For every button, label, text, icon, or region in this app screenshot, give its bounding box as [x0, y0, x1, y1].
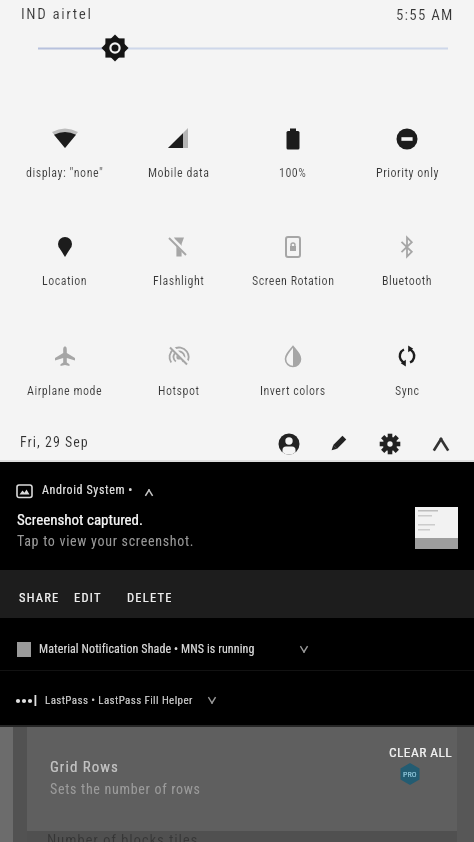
staticText: CLEAR ALL: [389, 744, 453, 760]
staticText: Screen Rotation: [252, 274, 335, 288]
staticText: Tap to view your screenshot.: [17, 533, 195, 549]
button[interactable]: [421, 424, 461, 464]
staticText: IND airtel: [21, 5, 93, 23]
button[interactable]: [370, 424, 410, 464]
staticText: Fri, 29 Sep: [20, 434, 89, 450]
staticText: EDIT: [74, 590, 102, 605]
button[interactable]: [122, 215, 236, 299]
button[interactable]: [350, 324, 464, 408]
button[interactable]: Android System •: [0, 466, 474, 564]
button[interactable]: DELETE: [118, 580, 182, 614]
staticText: Flashlight: [153, 274, 205, 288]
staticText: PRO: [403, 770, 417, 779]
button[interactable]: [236, 215, 350, 299]
button[interactable]: CLEAR ALL: [380, 742, 462, 762]
staticText: Sync: [395, 384, 420, 398]
button[interactable]: Material Notification Shade • MNS is run…: [0, 630, 474, 668]
staticText: Material Notification Shade • MNS is run…: [39, 642, 255, 656]
staticText: Invert colors: [260, 384, 326, 398]
button[interactable]: LastPass • LastPass Fill Helper: [0, 682, 474, 720]
staticText: Screenshot captured.: [17, 511, 144, 529]
staticText: Location: [42, 274, 88, 288]
staticText: LastPass • LastPass Fill Helper: [45, 694, 193, 707]
button[interactable]: [350, 107, 464, 191]
staticText: DELETE: [127, 590, 173, 605]
button[interactable]: [122, 324, 236, 408]
button[interactable]: [30, 30, 456, 66]
button[interactable]: [236, 107, 350, 191]
button[interactable]: [8, 107, 122, 191]
button[interactable]: SHARE: [8, 580, 70, 614]
staticText: 100%: [279, 166, 307, 180]
button[interactable]: [8, 324, 122, 408]
button[interactable]: [350, 215, 464, 299]
staticText: Android System •: [42, 483, 134, 497]
staticText: Bluetooth: [382, 274, 433, 288]
staticText: Number of blocks tiles: [47, 831, 199, 842]
staticText: Mobile data: [148, 166, 210, 180]
button[interactable]: [8, 215, 122, 299]
button[interactable]: EDIT: [63, 580, 113, 614]
staticText: Grid Rows: [50, 758, 119, 776]
staticText: display: "none": [26, 166, 104, 180]
staticText: Priority only: [376, 166, 439, 180]
button[interactable]: [318, 424, 358, 464]
staticText: Hotspot: [158, 384, 200, 398]
button[interactable]: [122, 107, 236, 191]
staticText: SHARE: [19, 590, 60, 605]
staticText: Airplane mode: [27, 384, 103, 398]
staticText: Sets the number of rows: [50, 781, 201, 797]
button[interactable]: [236, 324, 350, 408]
button[interactable]: [269, 424, 309, 464]
staticText: 5:55 AM: [396, 6, 454, 24]
